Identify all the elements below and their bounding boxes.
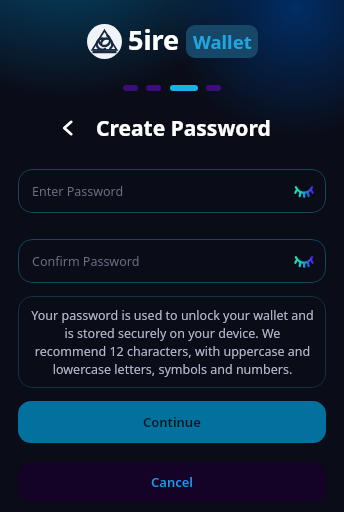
button[interactable]: Cancel <box>18 462 326 502</box>
staticText: Enter Password <box>32 183 124 200</box>
staticText: 5ire <box>128 21 180 58</box>
button[interactable]: Wallet <box>186 25 258 58</box>
staticText: Create Password <box>96 114 271 143</box>
staticText: Continue <box>143 413 201 431</box>
staticText: Confirm Password <box>32 253 140 270</box>
button[interactable]: Continue <box>18 401 326 443</box>
button[interactable]: Back <box>54 115 80 141</box>
button[interactable]: Confirm Password <box>18 239 326 283</box>
button[interactable]: Show password <box>293 180 315 202</box>
staticText: Cancel <box>151 473 194 491</box>
button[interactable]: Enter Password <box>18 169 326 213</box>
staticText: Wallet <box>193 29 252 54</box>
button[interactable]: Show password <box>293 250 315 272</box>
staticText: Your password is used to unlock your wal… <box>31 307 314 377</box>
